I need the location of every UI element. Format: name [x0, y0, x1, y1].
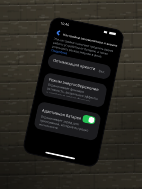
button[interactable]: Оптимизация яркости: [47, 53, 112, 80]
staticText: Ограничивает фоновую активность, визуаль…: [46, 83, 101, 103]
staticText: Оптимизация яркости: [53, 58, 97, 71]
button[interactable]: Адаптивная батарея: [33, 101, 102, 141]
button[interactable]: Подробнее: [51, 48, 68, 56]
staticText: Режим энергосбережения: [48, 77, 99, 92]
button[interactable]: Back: [51, 26, 64, 38]
button[interactable]: Toggle: [82, 114, 96, 125]
staticText: Эти настройки помогают продлить время ра…: [52, 37, 115, 61]
staticText: Ограничивает заряд для приложений, котор…: [39, 114, 94, 136]
staticText: 10:46: [60, 20, 71, 27]
staticText: Настройки аккумулятора и экрана: [63, 32, 118, 47]
staticText: Адаптивная батарея: [42, 108, 82, 121]
button[interactable]: Режим энергосбережения: [40, 72, 108, 108]
staticText: Вкл.: [98, 68, 106, 73]
